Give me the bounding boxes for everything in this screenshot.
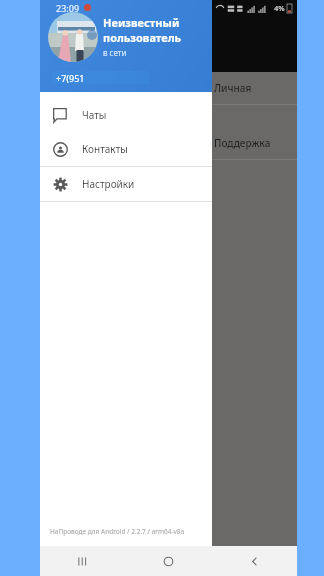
button[interactable]: Настройки bbox=[40, 167, 212, 201]
staticText: Контакты bbox=[82, 142, 128, 156]
button[interactable]: Контакты bbox=[40, 132, 212, 166]
button[interactable]: Личная bbox=[40, 72, 297, 104]
button[interactable]: Recents bbox=[40, 546, 125, 576]
button[interactable]: Home bbox=[125, 546, 211, 576]
button[interactable]: Home bbox=[125, 546, 211, 576]
staticText: 4% bbox=[274, 3, 285, 13]
staticText: Настройки bbox=[82, 177, 135, 191]
button[interactable]: Back bbox=[211, 546, 297, 576]
staticText: НаПроводе для Android / 2.2.7 / arm64-v8… bbox=[50, 527, 185, 536]
button[interactable]: Поддержка bbox=[40, 127, 297, 159]
button[interactable]: Чаты bbox=[40, 98, 212, 132]
button[interactable]: Recents bbox=[40, 546, 125, 576]
button[interactable]: Back bbox=[211, 546, 297, 576]
staticText: Поддержка bbox=[214, 136, 271, 150]
staticText: в сети bbox=[103, 47, 127, 58]
staticText: 23:09 bbox=[56, 2, 80, 14]
staticText: +7(951 bbox=[56, 72, 85, 84]
staticText: пользователь bbox=[103, 30, 182, 45]
button[interactable]: Profile photo bbox=[48, 12, 98, 62]
staticText: Неизвестный bbox=[103, 15, 180, 30]
staticText: Чаты bbox=[82, 108, 107, 122]
staticText: Личная bbox=[214, 81, 252, 95]
button[interactable]: 23:09 bbox=[40, 0, 212, 92]
